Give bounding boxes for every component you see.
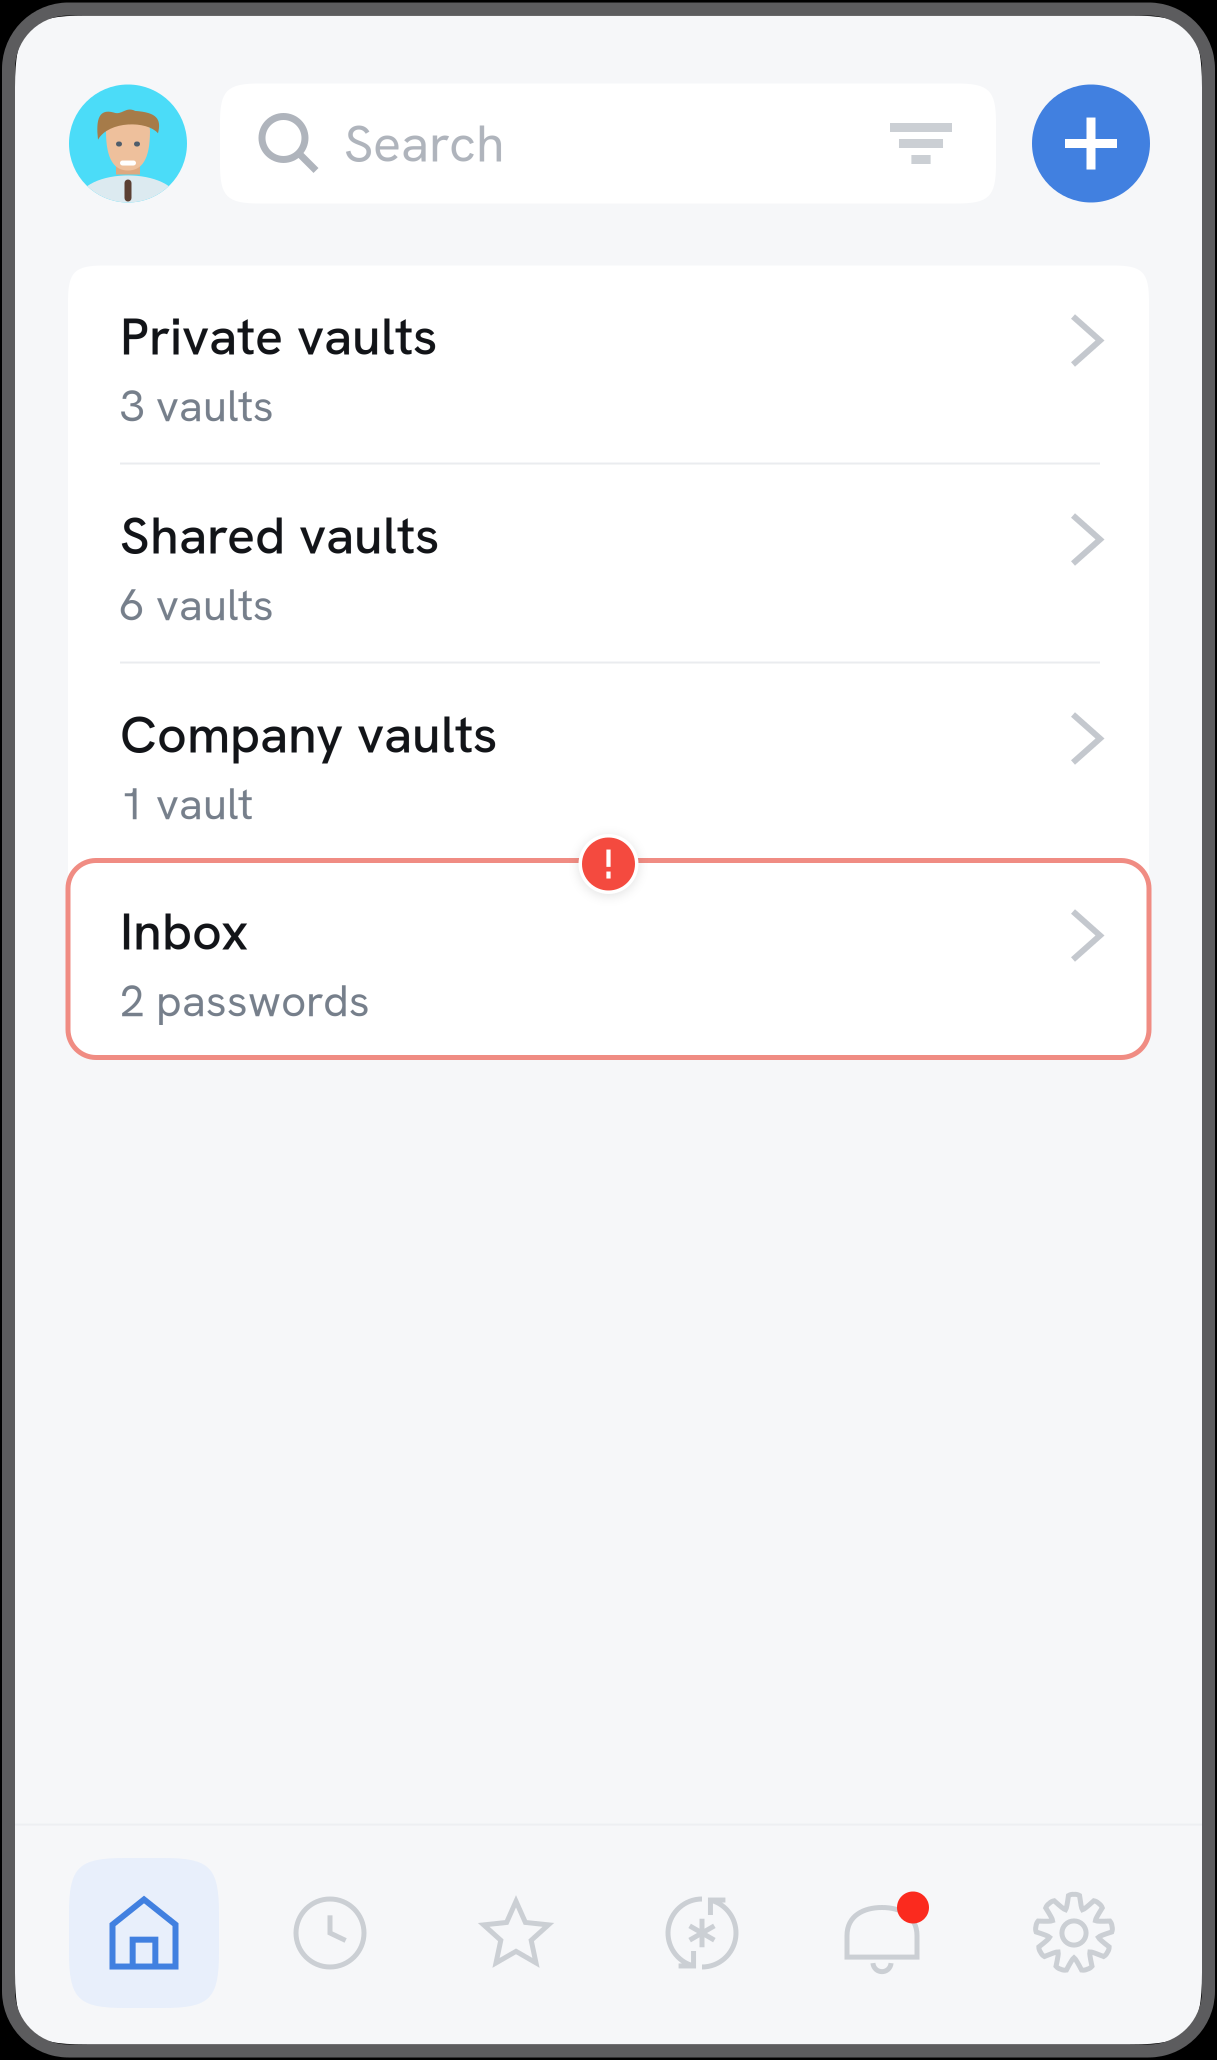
staticText: 6 vaults: [120, 576, 274, 634]
button[interactable]: Shared vaults: [68, 464, 1149, 661]
staticText: 2 passwords: [120, 972, 370, 1030]
staticText: Shared vaults: [120, 501, 439, 569]
button[interactable]: Recent: [255, 1858, 405, 2008]
staticText: 3 vaults: [120, 377, 274, 435]
staticText: Private vaults: [120, 302, 437, 370]
button[interactable]: Profile: [69, 84, 187, 202]
button[interactable]: Settings: [999, 1858, 1149, 2008]
button[interactable]: Private vaults: [68, 265, 1149, 462]
staticText: Search: [344, 110, 504, 177]
button[interactable]: Favorites: [441, 1858, 591, 2008]
staticText: Company vaults: [120, 700, 497, 768]
button[interactable]: Inbox: [68, 860, 1149, 1057]
staticText: 1 vault: [120, 775, 253, 833]
button[interactable]: Add: [1032, 84, 1150, 202]
button[interactable]: Company vaults: [68, 663, 1149, 860]
button[interactable]: Notifications: [813, 1858, 963, 2008]
button[interactable]: Password generator: [627, 1858, 777, 2008]
button[interactable]: Home: [69, 1858, 219, 2008]
staticText: Inbox: [120, 897, 248, 965]
button[interactable]: Filter: [864, 83, 978, 203]
